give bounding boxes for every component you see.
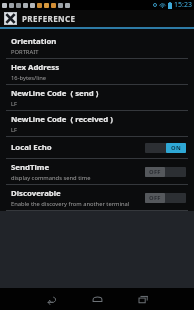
- staticText: PORTRAIT: [11, 48, 39, 56]
- staticText: LF: [11, 100, 18, 108]
- staticText: OFF: [149, 194, 161, 202]
- button[interactable]: Back: [28, 288, 74, 310]
- other: App icon: [4, 12, 17, 25]
- button[interactable]: Local Echo: [0, 137, 194, 158]
- button[interactable]: Toggle on: [145, 142, 186, 153]
- button[interactable]: Toggle off: [145, 166, 186, 177]
- button[interactable]: NewLine Code ( send ): [0, 85, 194, 110]
- staticText: Enable the discovery from another termin…: [11, 200, 130, 208]
- staticText: display commands send time: [11, 174, 91, 182]
- button[interactable]: Toggle off: [145, 192, 186, 203]
- button[interactable]: Recent apps: [120, 288, 166, 310]
- staticText: Local Echo: [11, 142, 52, 153]
- button[interactable]: NewLine Code ( received ): [0, 111, 194, 136]
- staticText: NewLine Code ( received ): [11, 114, 113, 125]
- button[interactable]: Discoverable: [0, 185, 194, 210]
- button[interactable]: SendTime: [0, 159, 194, 184]
- staticText: NewLine Code ( send ): [11, 88, 99, 99]
- staticText: Discoverable: [11, 188, 61, 199]
- button[interactable]: Orientation: [0, 33, 194, 58]
- staticText: LF: [11, 126, 18, 134]
- staticText: Hex Address: [11, 62, 60, 73]
- staticText: PREFERENCE: [22, 13, 76, 24]
- button[interactable]: Hex Address: [0, 59, 194, 84]
- staticText: 16-bytes/line: [11, 74, 47, 82]
- button[interactable]: Home: [74, 288, 120, 310]
- staticText: SendTime: [11, 162, 50, 173]
- staticText: OFF: [149, 168, 161, 176]
- button[interactable]: App icon: [0, 10, 194, 27]
- staticText: 15:23: [174, 0, 192, 10]
- staticText: ON: [171, 144, 181, 152]
- staticText: Orientation: [11, 36, 57, 47]
